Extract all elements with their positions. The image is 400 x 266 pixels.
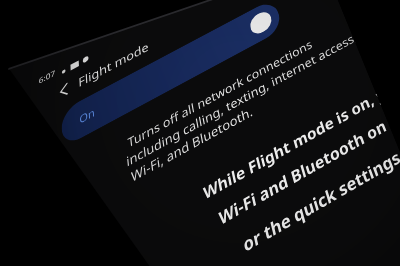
staticText: Flight mode <box>68 13 159 116</box>
button[interactable]: On <box>36 0 308 223</box>
staticText: On <box>71 98 103 133</box>
staticText: Turns off all network connections <box>112 0 329 213</box>
staticText: including calling, texting, internet acc… <box>108 0 373 246</box>
staticText: 6:07 <box>45 64 60 83</box>
staticText: Wi-Fi, and Bluetooth. <box>117 59 268 228</box>
button[interactable]: Navigate back <box>47 71 81 110</box>
